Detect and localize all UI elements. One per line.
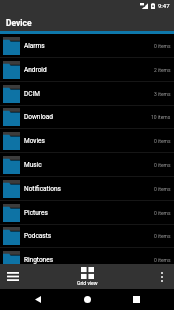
button[interactable]: Home bbox=[71, 289, 103, 310]
staticText: 0 items bbox=[154, 162, 171, 168]
button[interactable]: Music bbox=[0, 153, 174, 177]
button[interactable]: Notifications bbox=[0, 177, 174, 201]
staticText: Notifications bbox=[24, 185, 154, 193]
staticText: Ringtones bbox=[24, 256, 154, 264]
staticText: Music bbox=[24, 161, 154, 169]
button[interactable]: DCIM bbox=[0, 82, 174, 106]
staticText: 9:47 bbox=[158, 2, 170, 9]
staticText: Pictures bbox=[24, 209, 154, 217]
staticText: Movies bbox=[24, 137, 154, 145]
staticText: 10 items bbox=[151, 114, 171, 120]
button[interactable]: Back bbox=[22, 289, 54, 310]
staticText: 0 items bbox=[154, 186, 171, 192]
button[interactable]: Download bbox=[0, 105, 174, 129]
button[interactable]: Ringtones bbox=[0, 248, 174, 264]
staticText: 0 items bbox=[154, 210, 171, 216]
staticText: 0 items bbox=[154, 233, 171, 239]
button[interactable]: More options bbox=[155, 264, 174, 289]
button[interactable]: Movies bbox=[0, 129, 174, 153]
staticText: 0 items bbox=[154, 43, 171, 49]
staticText: Grid view bbox=[77, 280, 98, 286]
button[interactable]: Alarms bbox=[0, 34, 174, 58]
staticText: Download bbox=[24, 113, 151, 121]
staticText: Android bbox=[24, 66, 154, 74]
staticText: Device bbox=[6, 18, 32, 28]
button[interactable]: Pictures bbox=[0, 201, 174, 225]
staticText: Podcasts bbox=[24, 232, 154, 240]
button[interactable]: Recents bbox=[120, 289, 152, 310]
staticText: 0 items bbox=[154, 138, 171, 144]
staticText: 0 items bbox=[154, 257, 171, 263]
staticText: DCIM bbox=[24, 90, 154, 98]
staticText: 2 items bbox=[154, 67, 171, 73]
button[interactable]: Grid view bbox=[71, 267, 104, 286]
button[interactable]: Navigation drawer bbox=[0, 264, 25, 289]
staticText: Alarms bbox=[24, 42, 154, 50]
staticText: 3 items bbox=[154, 91, 171, 97]
button[interactable]: Android bbox=[0, 58, 174, 82]
button[interactable]: Podcasts bbox=[0, 224, 174, 248]
